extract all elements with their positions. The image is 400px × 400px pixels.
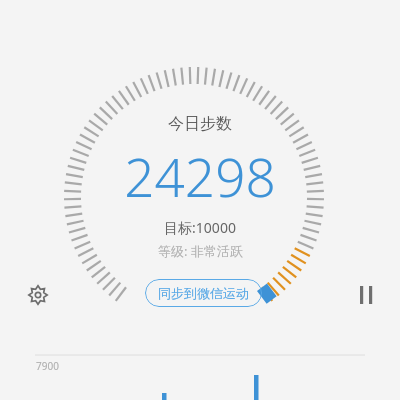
button[interactable]: Pause <box>349 278 383 312</box>
button[interactable]: Settings <box>21 278 55 312</box>
staticText: 等级: 非常活跃 <box>158 242 243 260</box>
staticText: 同步到微信运动 <box>158 285 249 301</box>
staticText: 目标:10000 <box>164 218 236 237</box>
staticText: 今日步数 <box>168 114 232 134</box>
staticText: 24298 <box>124 140 276 212</box>
staticText: 7900 <box>36 359 59 373</box>
button[interactable]: 同步到微信运动 <box>145 279 262 307</box>
